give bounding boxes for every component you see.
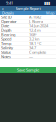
- button[interactable]: Site ID: [0, 15, 56, 19]
- staticText: J. Rivera: [29, 19, 43, 24]
- staticText: 14 Jun 2024: [29, 23, 48, 28]
- staticText: 18.1 °C: [29, 41, 42, 46]
- staticText: Date: [1, 23, 9, 28]
- staticText: A-1042: [29, 14, 41, 20]
- staticText: Details: [2, 10, 14, 16]
- staticText: Depth: [1, 27, 11, 33]
- staticText: Site ID: [1, 14, 12, 20]
- button[interactable]: ‹: [1, 5, 5, 12]
- staticText: Complete: [29, 49, 46, 55]
- button[interactable]: Notes: [0, 55, 56, 59]
- staticText: 3.2 kn: [29, 36, 39, 42]
- button[interactable]: Bearing: [0, 33, 56, 37]
- button[interactable]: Status: [0, 50, 56, 55]
- button[interactable]: Speed: [0, 37, 56, 41]
- staticText: Salinity: [1, 45, 13, 50]
- button[interactable]: Temp: [0, 41, 56, 46]
- staticText: Save Sample: [17, 67, 39, 73]
- staticText: Operator: [1, 19, 17, 24]
- staticText: ▮▮▮: [44, 1, 50, 5]
- staticText: Map: [46, 10, 54, 16]
- staticText: —: [29, 54, 33, 59]
- staticText: Temp: [1, 41, 11, 46]
- button[interactable]: Salinity: [0, 46, 56, 50]
- button[interactable]: Date: [0, 24, 56, 28]
- staticText: 34.7: [29, 45, 36, 50]
- staticText: Speed: [1, 36, 11, 42]
- staticText: Sample Report: [15, 6, 40, 11]
- staticText: 168°: [29, 32, 37, 37]
- staticText: ‹: [2, 5, 4, 12]
- staticText: 9:41: [6, 0, 13, 6]
- staticText: Status: [1, 49, 11, 55]
- staticText: 12.4 m: [29, 27, 41, 33]
- button[interactable]: Save Sample: [0, 67, 56, 73]
- button[interactable]: Operator: [0, 19, 56, 24]
- staticText: Bearing: [1, 32, 15, 37]
- button[interactable]: Depth: [0, 28, 56, 33]
- staticText: Notes: [1, 54, 11, 59]
